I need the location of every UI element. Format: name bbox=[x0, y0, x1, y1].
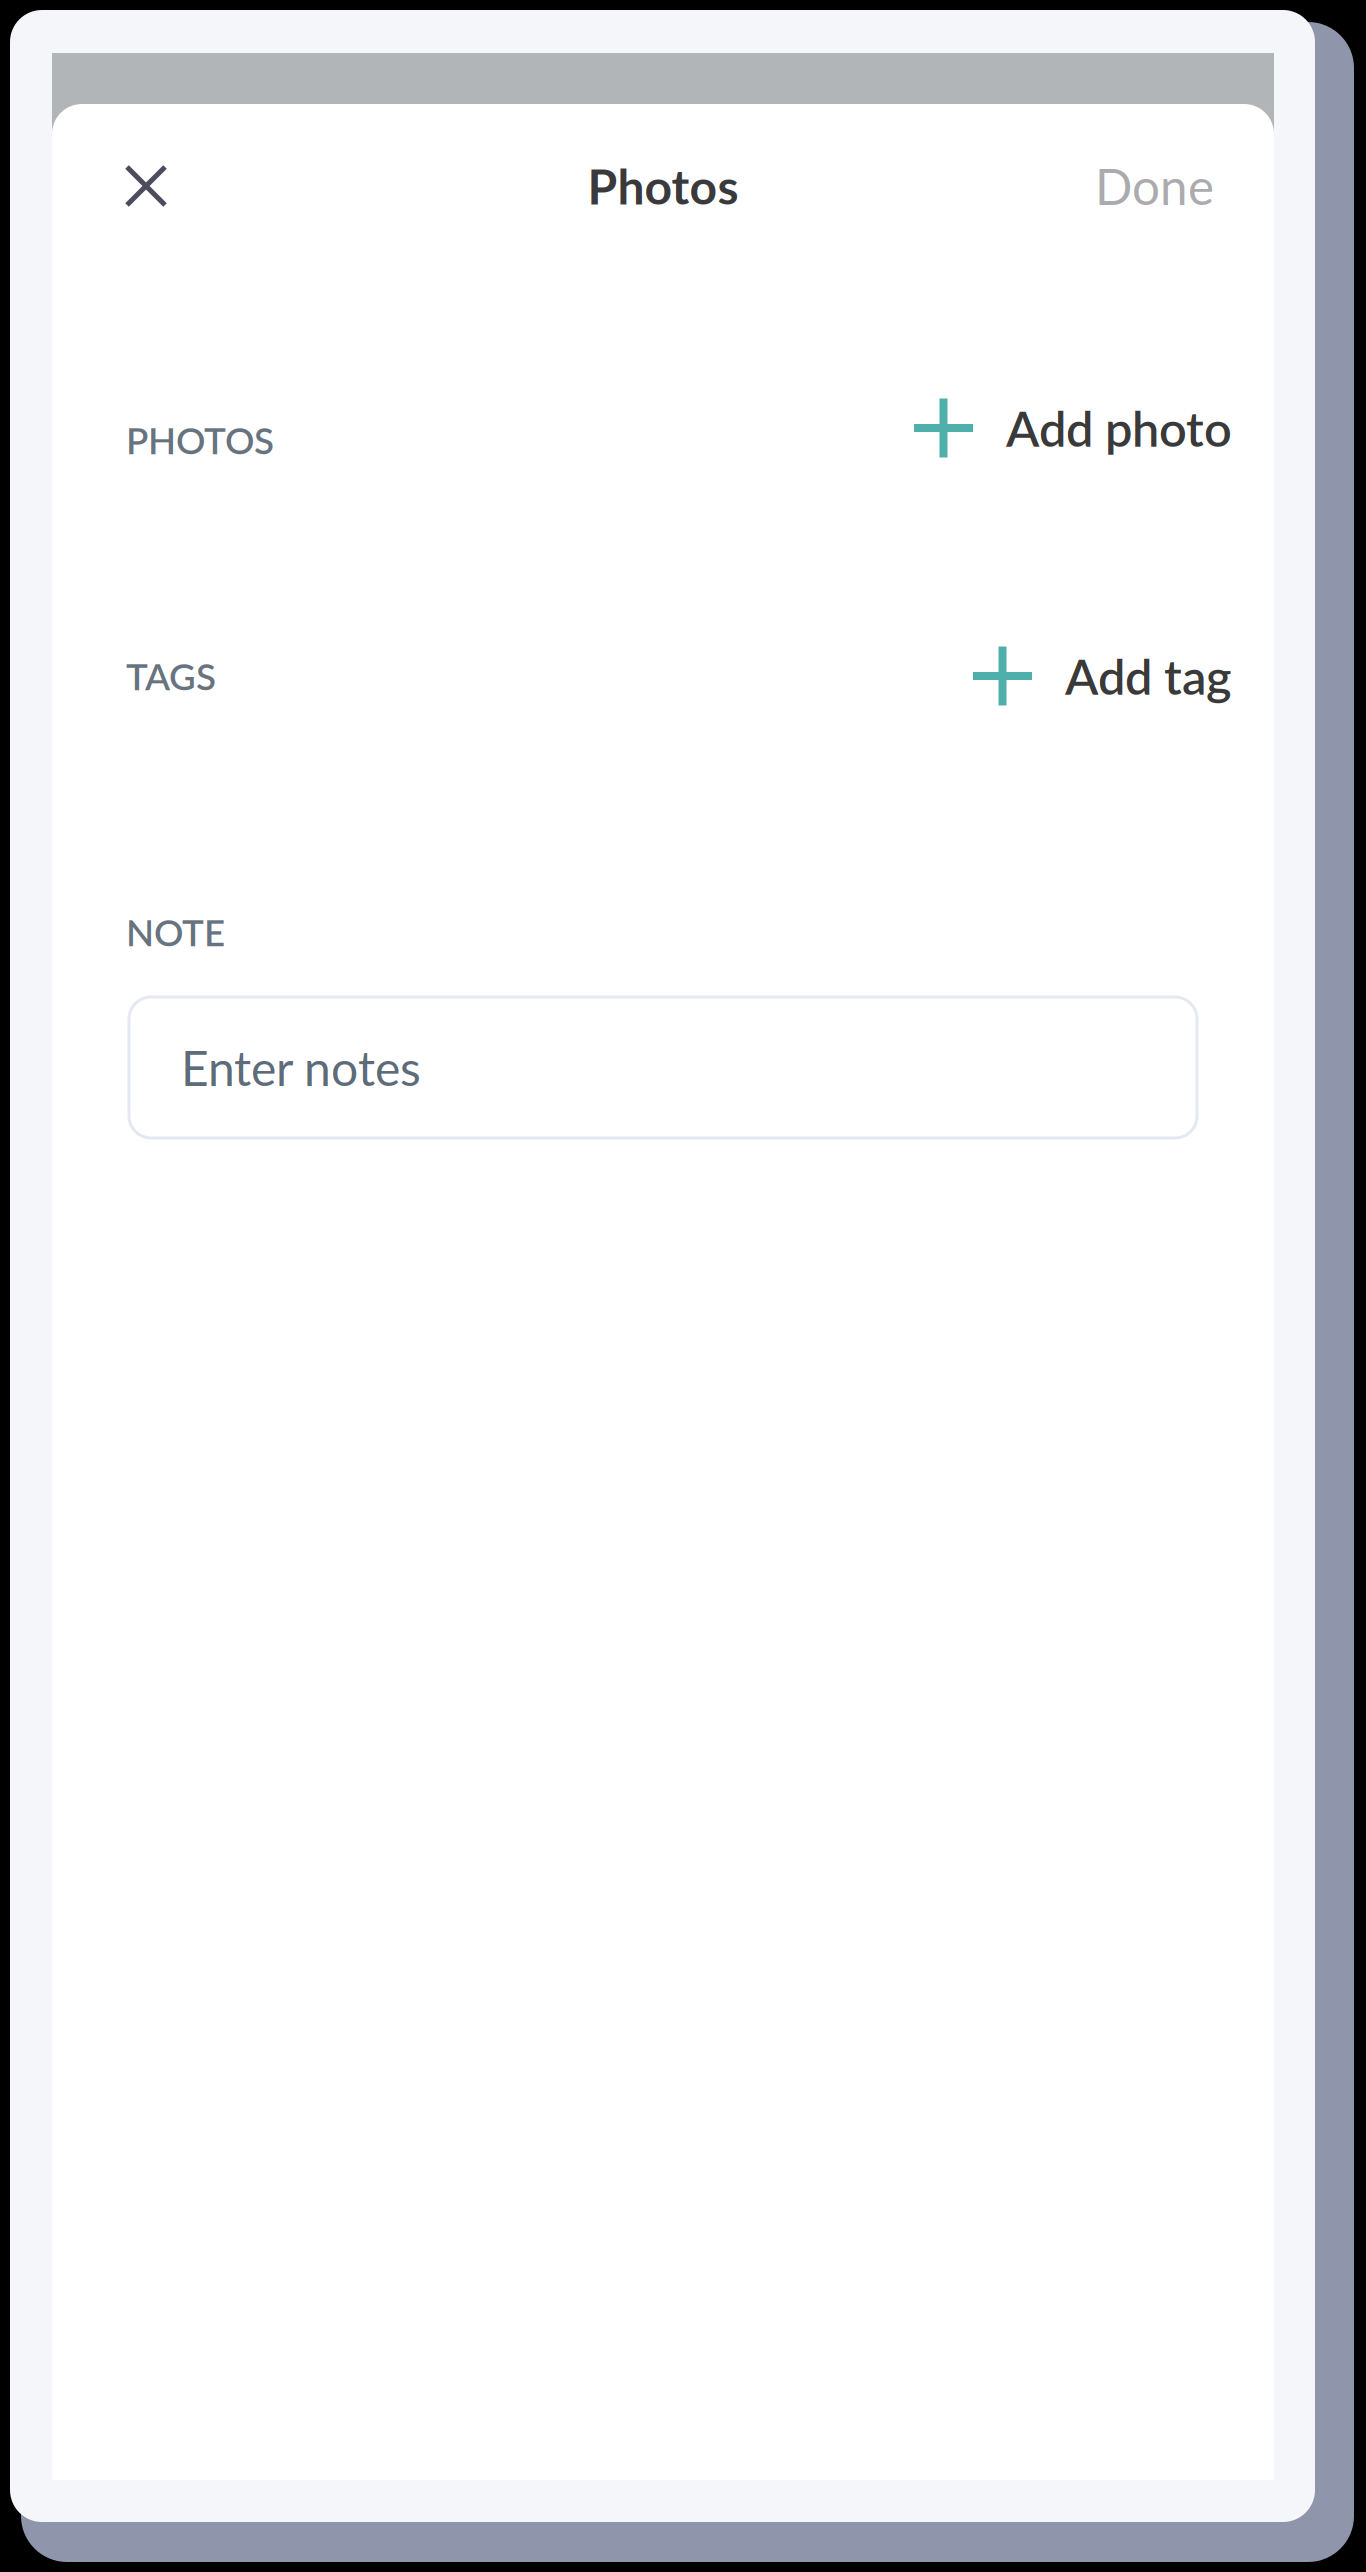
staticText: NOTE bbox=[126, 910, 225, 954]
button[interactable]: Add photo bbox=[914, 386, 1232, 469]
button[interactable]: Add tag bbox=[973, 634, 1232, 717]
staticText: PHOTOS bbox=[126, 418, 274, 462]
staticText: Photos bbox=[587, 157, 738, 215]
button[interactable]: Enter notes bbox=[129, 997, 1197, 1138]
button[interactable]: Close bbox=[94, 134, 198, 238]
staticText: Add tag bbox=[1065, 647, 1232, 705]
button[interactable]: Done bbox=[1095, 134, 1214, 238]
staticText: TAGS bbox=[126, 654, 216, 698]
staticText: Enter notes bbox=[181, 1039, 421, 1096]
staticText: Add photo bbox=[1006, 399, 1232, 457]
staticText: Done bbox=[1095, 156, 1214, 216]
